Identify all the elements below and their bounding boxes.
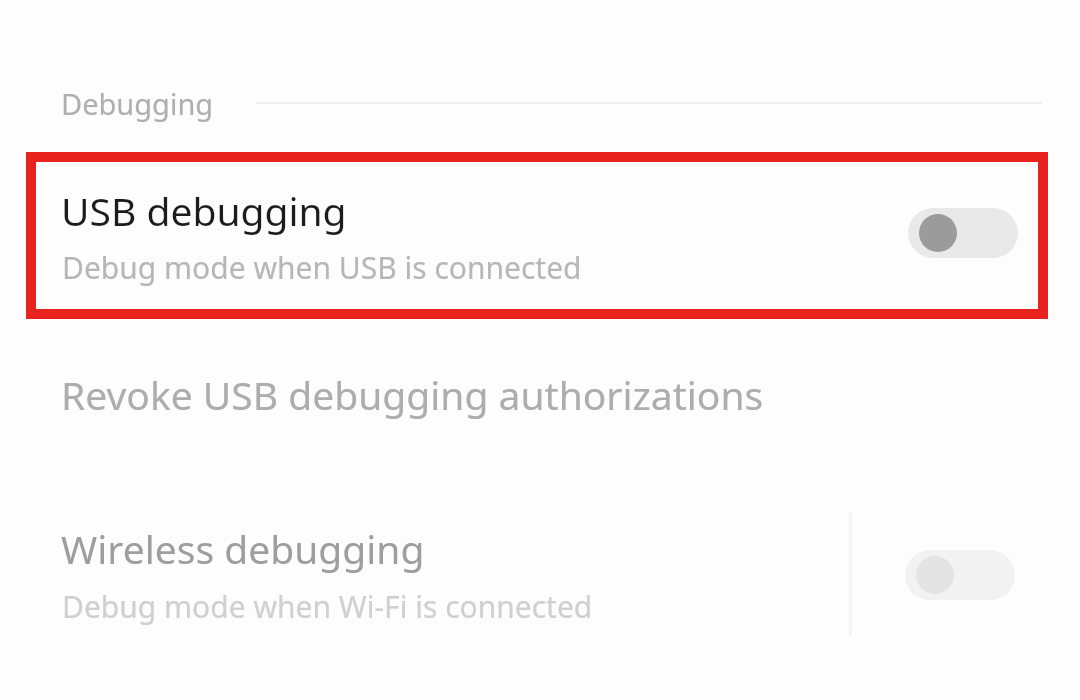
- button[interactable]: Wireless debugging toggle, off: [897, 542, 1023, 608]
- button[interactable]: Revoke USB debugging authorizations: [0, 340, 1080, 450]
- staticText: Revoke USB debugging authorizations: [61, 368, 764, 421]
- staticText: Debug mode when Wi-Fi is connected: [62, 586, 593, 627]
- button[interactable]: USB debugging: [0, 140, 1080, 330]
- button[interactable]: USB debugging toggle, off: [900, 200, 1026, 266]
- button[interactable]: Wireless debugging: [0, 496, 1080, 664]
- staticText: Wireless debugging: [61, 522, 425, 575]
- staticText: USB debugging: [61, 184, 347, 237]
- staticText: Debugging: [61, 84, 214, 123]
- staticText: Debug mode when USB is connected: [62, 247, 582, 288]
